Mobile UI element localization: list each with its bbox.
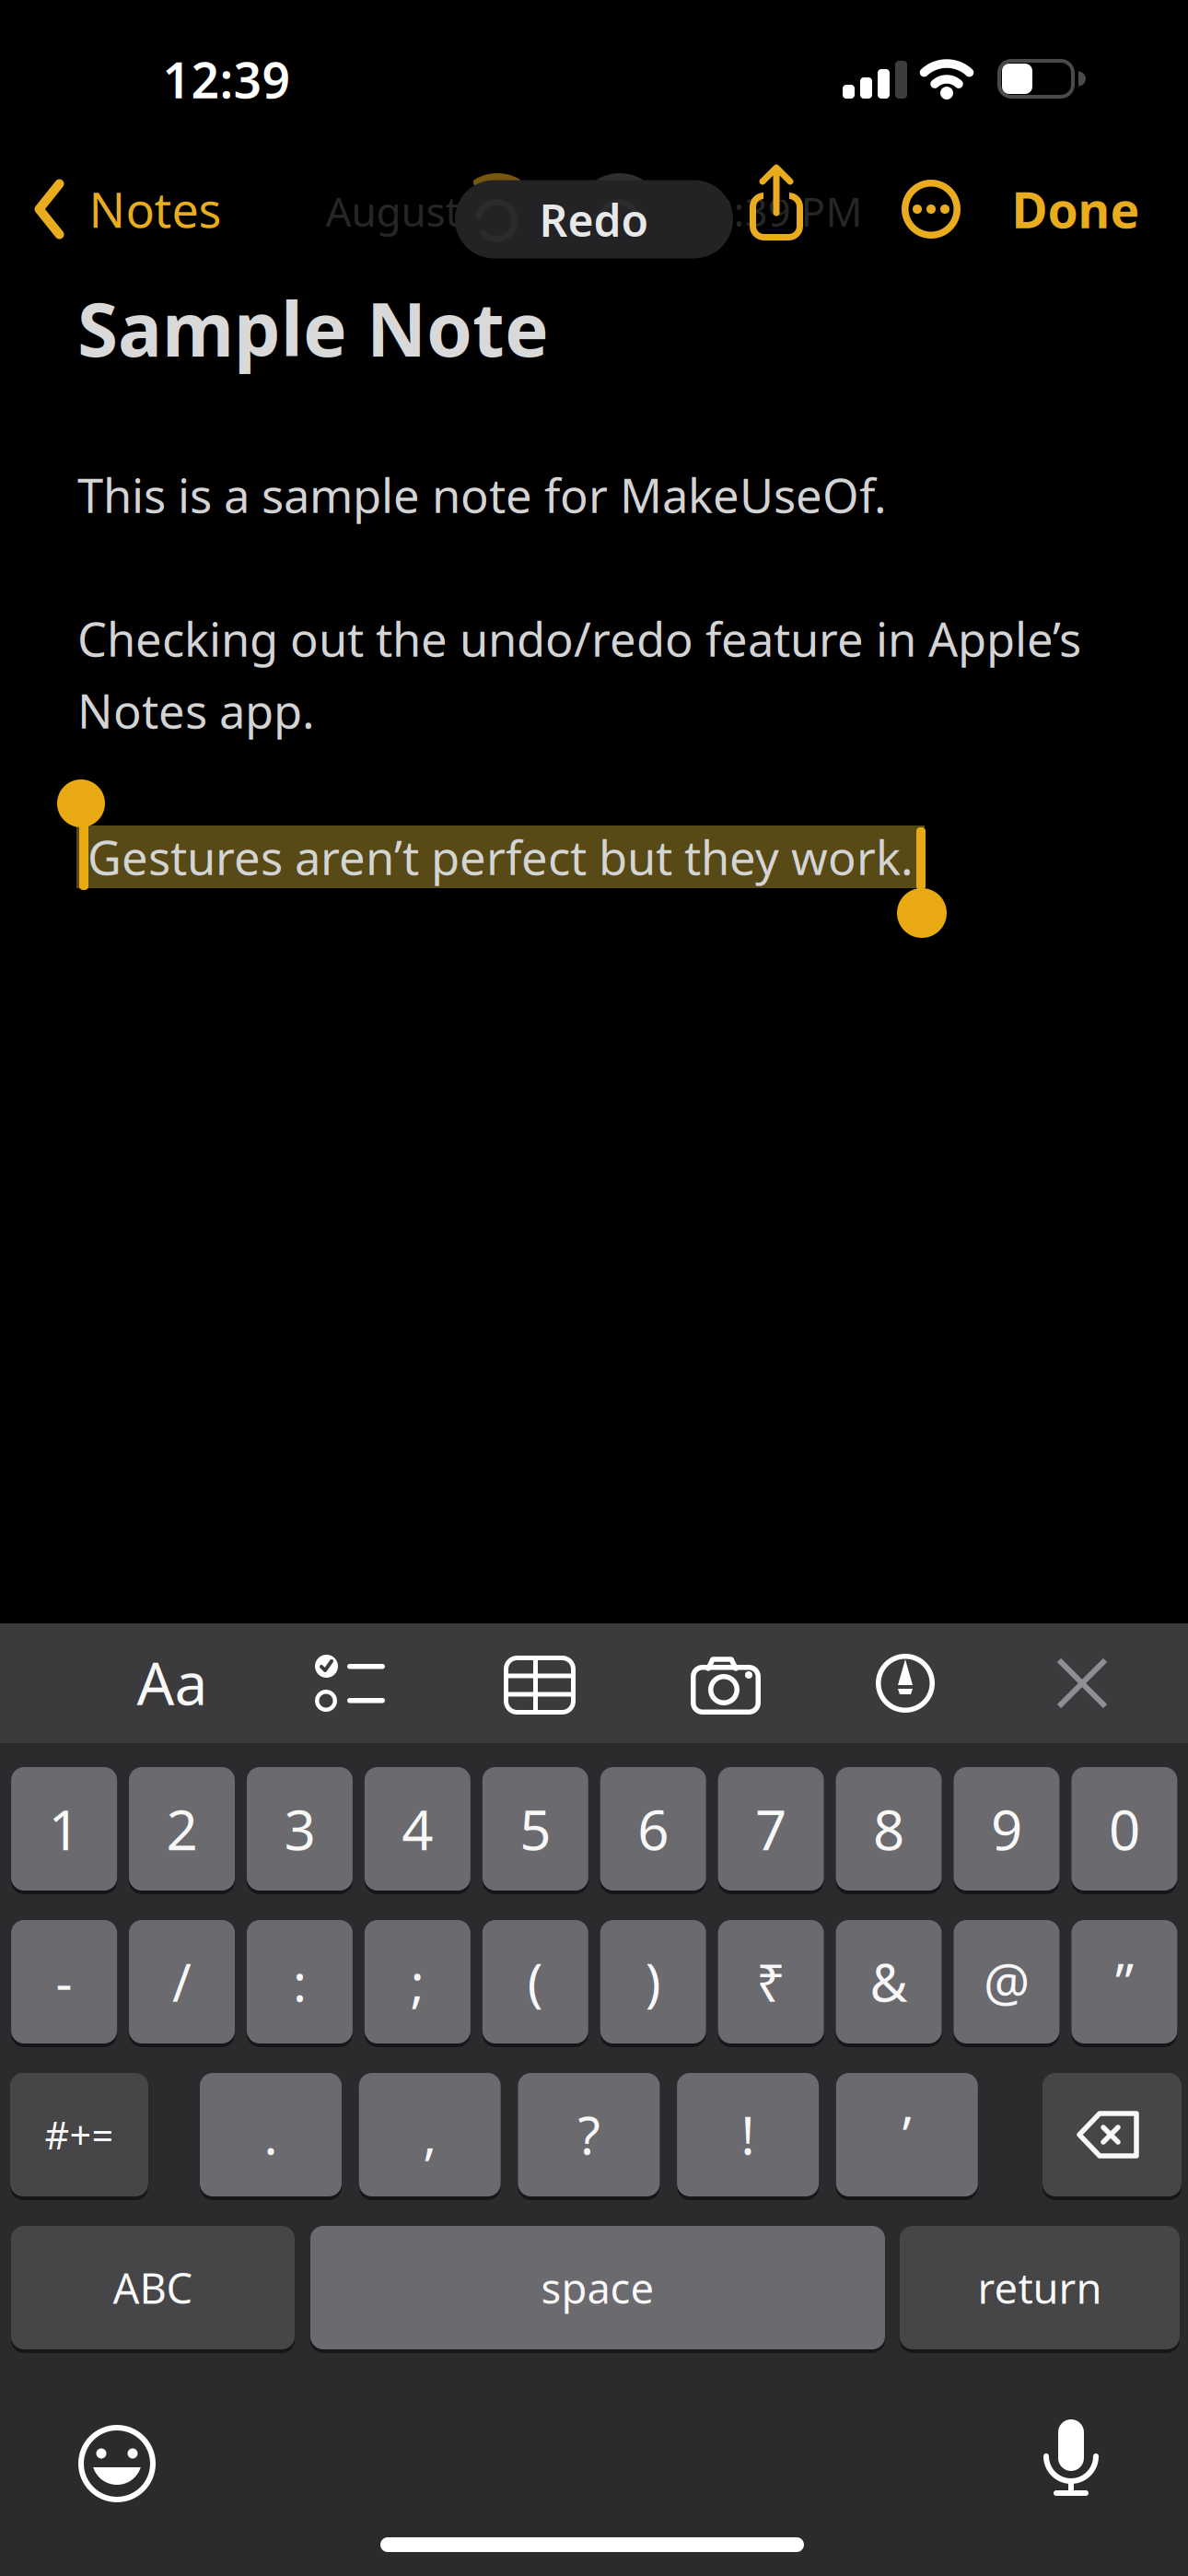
staticText: Aa xyxy=(137,1643,208,1721)
button[interactable]: 0 xyxy=(1071,1767,1177,1891)
button[interactable]: 8 xyxy=(836,1767,942,1891)
button[interactable]: Close xyxy=(1041,1642,1124,1725)
button[interactable]: Done xyxy=(1012,177,1140,242)
staticText: 1 xyxy=(48,1792,80,1866)
staticText: ! xyxy=(741,2100,755,2169)
staticText: 4 xyxy=(402,1792,433,1866)
button[interactable]: More xyxy=(894,172,968,246)
staticText: 5 xyxy=(520,1792,551,1866)
button[interactable]: : xyxy=(247,1920,353,2043)
staticText: space xyxy=(541,2260,654,2315)
button[interactable]: Redo xyxy=(455,180,733,258)
button[interactable]: 7 xyxy=(718,1767,824,1891)
button[interactable]: Notes xyxy=(35,177,221,241)
button[interactable]: , xyxy=(359,2073,501,2196)
staticText: ; xyxy=(411,1947,424,2016)
staticText: & xyxy=(870,1947,908,2016)
staticText: Notes app. xyxy=(77,679,315,741)
button[interactable]: ” xyxy=(1071,1920,1177,2043)
button[interactable]: Table xyxy=(498,1643,581,1726)
staticText: Redo xyxy=(539,190,649,249)
staticText: ? xyxy=(578,2100,600,2169)
button[interactable]: @ xyxy=(954,1920,1060,2043)
staticText: 9 xyxy=(991,1792,1022,1866)
button[interactable]: 6 xyxy=(600,1767,706,1891)
button[interactable]: return xyxy=(900,2226,1180,2349)
staticText: 12:39 xyxy=(163,47,291,112)
staticText: : xyxy=(293,1947,307,2016)
staticText: 0 xyxy=(1109,1792,1140,1866)
staticText: ) xyxy=(645,1947,661,2016)
button[interactable]: Emoji xyxy=(76,2422,158,2505)
staticText: . xyxy=(264,2100,278,2169)
staticText: ’ xyxy=(902,2100,912,2169)
staticText: Done xyxy=(1012,177,1140,242)
button[interactable]: space xyxy=(310,2226,885,2349)
button[interactable]: ! xyxy=(677,2073,819,2196)
staticText: 3 xyxy=(284,1792,315,1866)
button[interactable]: 9 xyxy=(954,1767,1060,1891)
button[interactable]: ’ xyxy=(836,2073,978,2196)
staticText: ( xyxy=(528,1947,543,2016)
button[interactable]: / xyxy=(129,1920,235,2043)
staticText: #+= xyxy=(45,2109,114,2160)
button[interactable]: 4 xyxy=(365,1767,471,1891)
staticText: 8 xyxy=(873,1792,904,1866)
button[interactable]: ( xyxy=(482,1920,588,2043)
button[interactable]: 2 xyxy=(129,1767,235,1891)
staticText: August 28, 2023 at 12:39 PM xyxy=(326,184,862,238)
button[interactable]: ₹ xyxy=(718,1920,824,2043)
staticText: @ xyxy=(984,1947,1030,2016)
staticText: 7 xyxy=(755,1792,787,1866)
button[interactable]: 5 xyxy=(482,1767,588,1891)
staticText: / xyxy=(172,1947,192,2016)
staticText: , xyxy=(423,2100,437,2169)
staticText: Notes xyxy=(89,177,221,241)
staticText: Sample Note xyxy=(77,279,549,377)
button[interactable]: Camera xyxy=(684,1643,767,1726)
button[interactable]: . xyxy=(200,2073,342,2196)
staticText: 6 xyxy=(637,1792,669,1866)
button[interactable]: #+= xyxy=(10,2073,148,2196)
button[interactable]: Share xyxy=(740,159,813,248)
staticText: Checking out the undo/redo feature in Ap… xyxy=(77,608,1081,670)
staticText: - xyxy=(56,1947,72,2016)
staticText: ” xyxy=(1115,1947,1134,2016)
button[interactable]: ? xyxy=(518,2073,660,2196)
staticText: ABC xyxy=(113,2260,193,2315)
staticText: Gestures aren’t perfect but they work. xyxy=(87,826,914,888)
staticText: return xyxy=(978,2260,1102,2315)
staticText: ₹ xyxy=(756,1947,786,2016)
button[interactable]: - xyxy=(11,1920,117,2043)
button[interactable]: Dictate xyxy=(1030,2414,1112,2506)
button[interactable]: ABC xyxy=(11,2226,295,2349)
button[interactable]: ; xyxy=(365,1920,471,2043)
button[interactable]: Markup xyxy=(864,1642,947,1725)
button[interactable]: Checklist xyxy=(310,1642,393,1725)
staticText: This is a sample note for MakeUseOf. xyxy=(77,464,887,526)
button[interactable]: & xyxy=(836,1920,942,2043)
button[interactable]: Delete xyxy=(1042,2073,1182,2196)
button[interactable]: ) xyxy=(600,1920,706,2043)
button[interactable]: 1 xyxy=(11,1767,117,1891)
staticText: 2 xyxy=(166,1792,198,1866)
button[interactable]: Format xyxy=(112,1632,232,1733)
button[interactable]: 3 xyxy=(247,1767,353,1891)
